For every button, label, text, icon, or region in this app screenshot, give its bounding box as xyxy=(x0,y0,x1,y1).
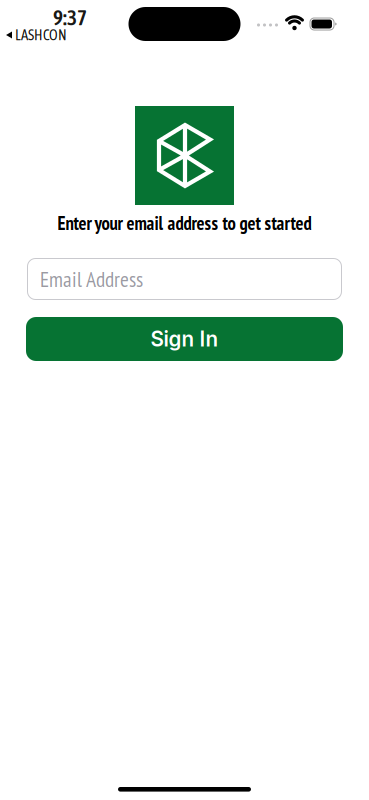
staticText: LASHCON xyxy=(15,27,67,43)
button[interactable]: Back to LASHCON xyxy=(6,27,67,43)
staticText: 9:37 xyxy=(53,5,87,30)
staticText: Email Address xyxy=(40,265,143,293)
button[interactable]: Email Address xyxy=(27,258,342,300)
staticText: Sign In xyxy=(150,326,218,351)
staticText: Enter your email address to get started xyxy=(57,211,311,235)
button[interactable]: Sign In xyxy=(26,317,343,361)
